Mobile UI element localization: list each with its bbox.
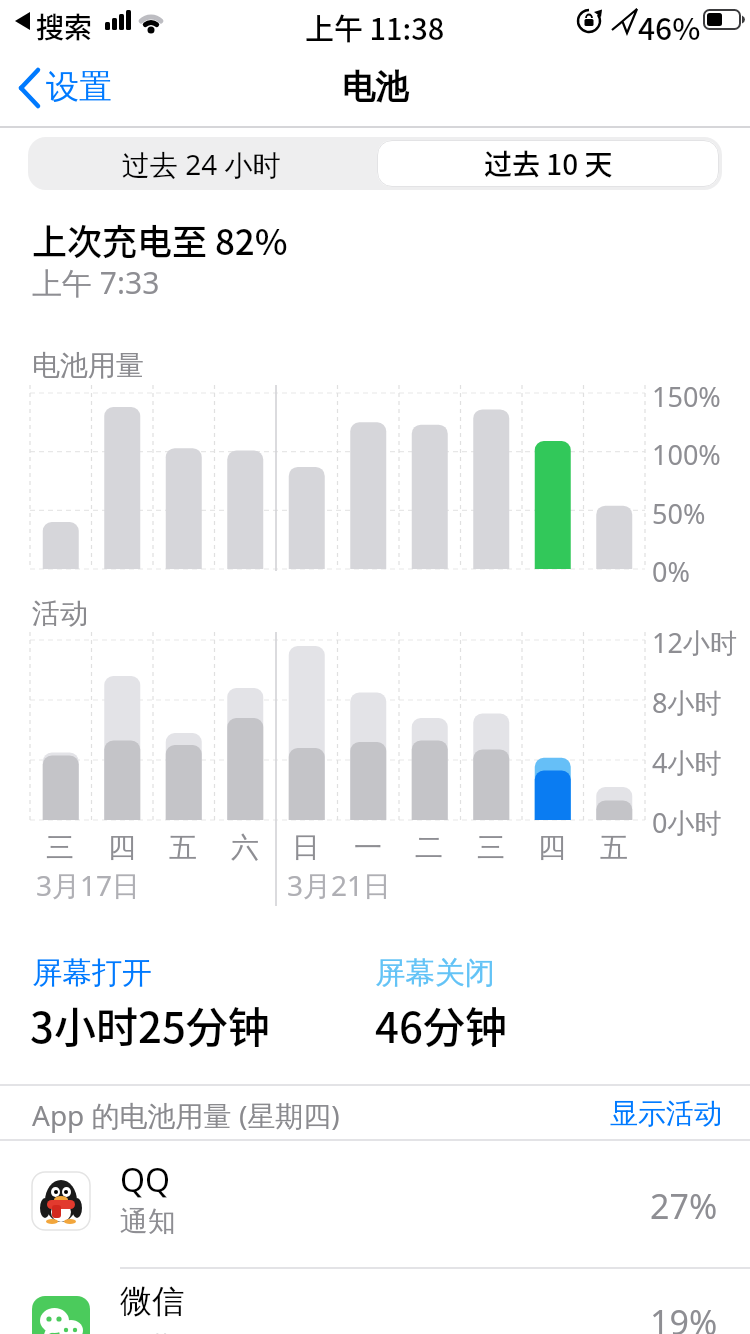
staticText: 日 bbox=[292, 830, 320, 865]
staticText: QQ bbox=[120, 1158, 170, 1202]
staticText: 46分钟 bbox=[375, 994, 507, 1055]
staticText: 0% bbox=[652, 553, 690, 590]
staticText: 电池 bbox=[342, 66, 408, 108]
button[interactable]: 过去 24 小时 bbox=[28, 137, 375, 190]
staticText: 一 bbox=[354, 830, 382, 865]
staticText: 屏幕打开 bbox=[32, 954, 152, 992]
staticText: App 的电池用量 (星期四) bbox=[32, 1096, 340, 1134]
staticText: 三 bbox=[46, 830, 74, 865]
staticText: 四 bbox=[108, 830, 136, 865]
staticText: 过去 24 小时 bbox=[122, 145, 281, 183]
staticText: 通知 bbox=[120, 1204, 176, 1239]
staticText: 三 bbox=[477, 830, 505, 865]
staticText: 四 bbox=[538, 830, 566, 865]
staticText: 4小时 bbox=[652, 744, 722, 781]
staticText: 搜索 bbox=[36, 6, 93, 47]
staticText: 50% bbox=[652, 495, 706, 532]
staticText: 五 bbox=[600, 830, 628, 865]
button[interactable] bbox=[377, 140, 719, 187]
staticText: 19% bbox=[650, 1299, 718, 1334]
staticText: 六 bbox=[231, 830, 259, 865]
button[interactable]: 微信 bbox=[0, 1269, 750, 1334]
staticText: 27% bbox=[650, 1183, 718, 1229]
staticText: 设置 bbox=[46, 66, 112, 108]
staticText: 150% bbox=[652, 378, 721, 415]
staticText: 过去 10 天 bbox=[484, 143, 613, 184]
staticText: 100% bbox=[652, 436, 721, 473]
staticText: 活动 bbox=[32, 596, 88, 631]
button[interactable]: 显示活动 bbox=[472, 1096, 722, 1131]
staticText: 46% bbox=[638, 5, 701, 48]
staticText: 屏幕关闭 bbox=[375, 954, 495, 992]
staticText: 3月21日 bbox=[287, 866, 392, 904]
staticText: 上午 7:33 bbox=[32, 262, 160, 303]
staticText: 3月17日 bbox=[36, 866, 141, 904]
staticText: 上次充电至 82% bbox=[32, 214, 288, 265]
staticText: 8小时 bbox=[652, 684, 722, 721]
button[interactable]: 设置 bbox=[14, 62, 134, 114]
staticText: 微信 bbox=[120, 1281, 184, 1321]
staticText: 0小时 bbox=[652, 804, 722, 841]
staticText: 上午 11:38 bbox=[305, 6, 445, 48]
staticText: 12小时 bbox=[652, 624, 737, 661]
staticText: 电池用量 bbox=[32, 348, 144, 383]
staticText: 3小时25分钟 bbox=[30, 994, 270, 1055]
staticText: 显示活动 bbox=[610, 1096, 722, 1131]
button[interactable]: QQ bbox=[0, 1141, 750, 1268]
staticText: 二 bbox=[415, 830, 443, 865]
staticText: 五 bbox=[169, 830, 197, 865]
